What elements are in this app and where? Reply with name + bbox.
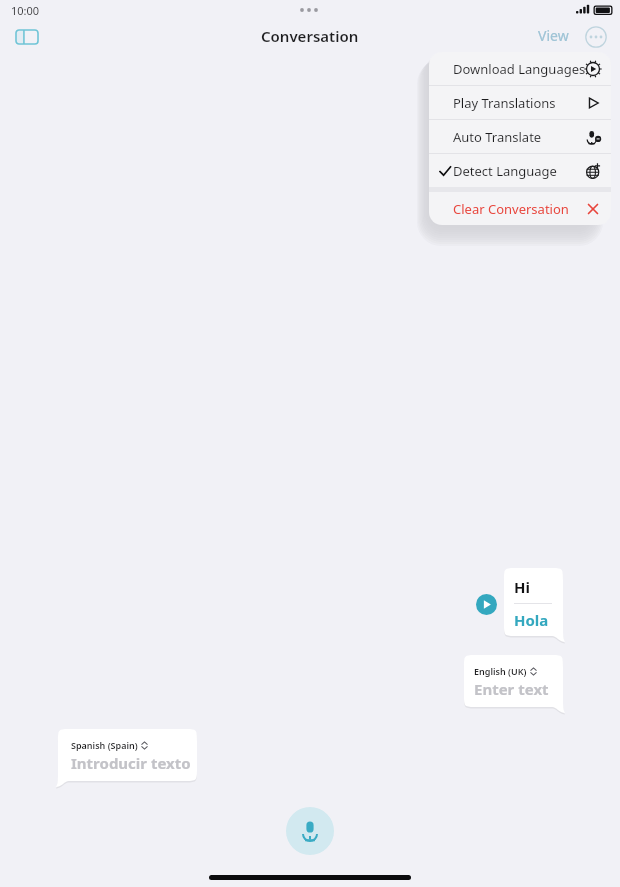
- button[interactable]: View: [538, 26, 569, 45]
- staticText: Download Languages: [453, 60, 586, 78]
- staticText: Detect Language: [453, 162, 557, 180]
- button[interactable]: More options: [585, 26, 607, 48]
- staticText: Spanish (Spain): [71, 739, 138, 751]
- staticText: 10:00: [11, 3, 40, 18]
- button[interactable]: Play translation: [476, 594, 497, 615]
- button[interactable]: English (UK): [464, 655, 563, 713]
- button[interactable]: Download Languages: [429, 52, 611, 85]
- staticText: Clear Conversation: [453, 200, 569, 218]
- staticText: Auto Translate: [453, 128, 542, 146]
- button[interactable]: Toggle sidebar: [14, 26, 40, 48]
- staticText: Conversation: [261, 26, 359, 46]
- staticText: English (UK): [474, 665, 527, 677]
- staticText: Hi: [514, 577, 530, 597]
- button[interactable]: Detect Language: [429, 154, 611, 187]
- button[interactable]: Play Translations: [429, 86, 611, 119]
- staticText: View: [538, 26, 569, 45]
- button[interactable]: Hi: [504, 568, 563, 642]
- button[interactable]: Start recording: [286, 807, 334, 855]
- staticText: Enter text: [474, 679, 549, 699]
- button[interactable]: Spanish (Spain): [58, 729, 197, 787]
- button[interactable]: Clear Conversation: [429, 192, 611, 225]
- staticText: Hola: [514, 610, 549, 630]
- staticText: Play Translations: [453, 94, 556, 112]
- button[interactable]: Auto Translate: [429, 120, 611, 153]
- staticText: Introducir texto: [71, 753, 191, 773]
